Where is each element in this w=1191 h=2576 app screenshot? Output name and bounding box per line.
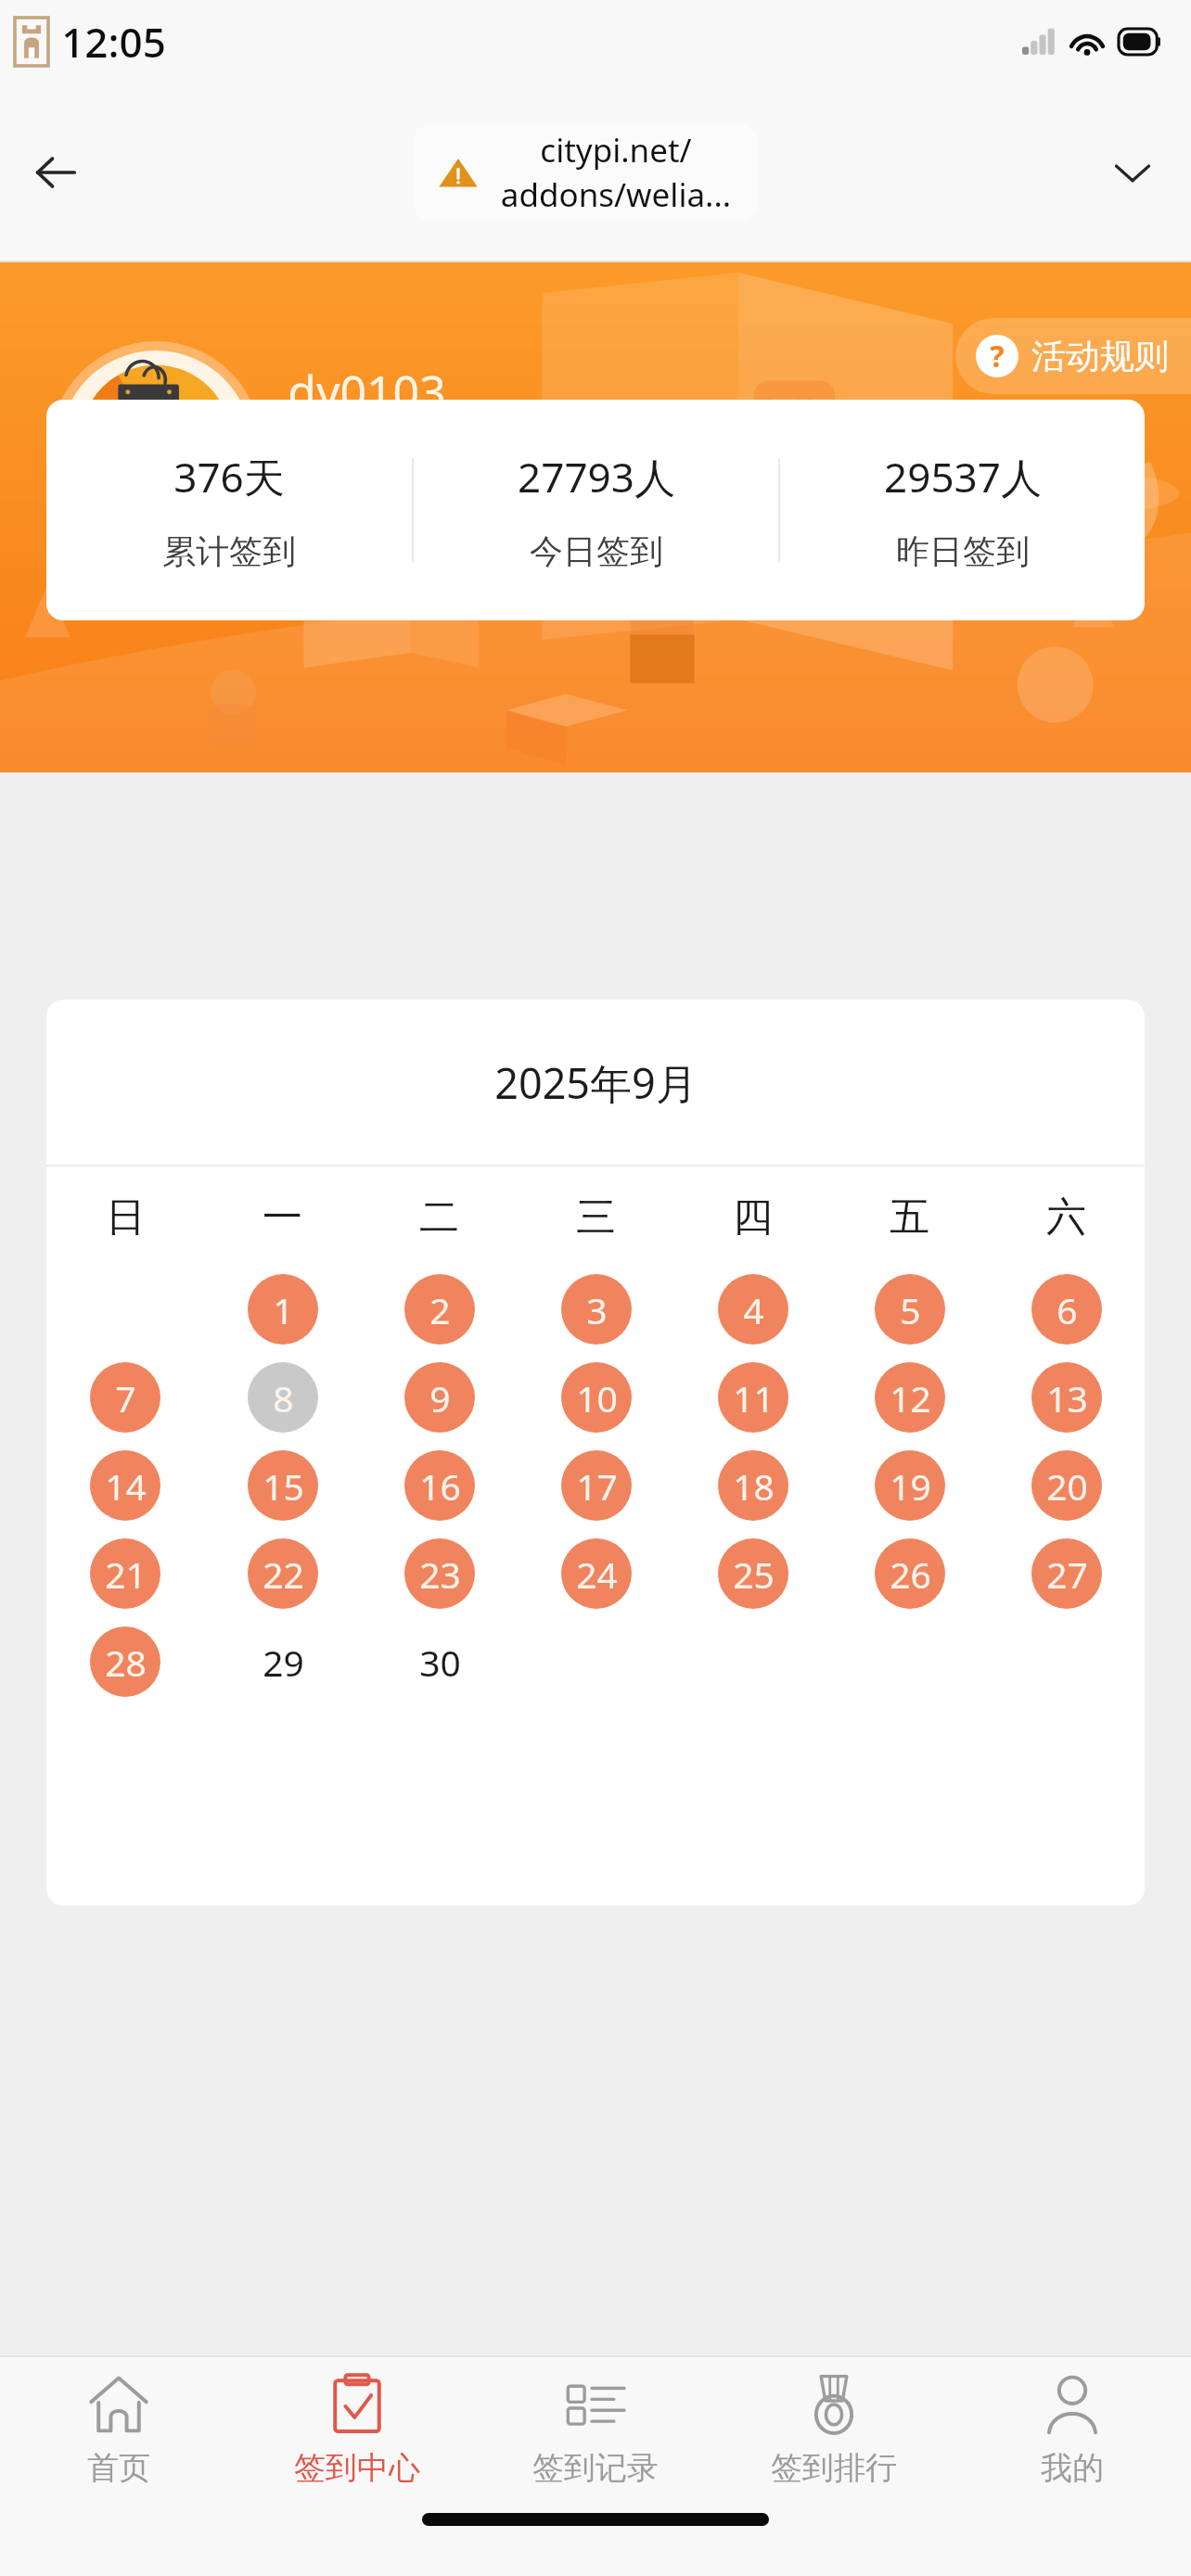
button[interactable]: 14 bbox=[90, 1450, 160, 1521]
staticText: 18 bbox=[733, 1461, 775, 1511]
button[interactable]: 首页 bbox=[0, 2357, 237, 2504]
staticText: 日 bbox=[106, 1192, 146, 1243]
staticText: 3 bbox=[586, 1285, 608, 1334]
staticText: 13 bbox=[1046, 1373, 1088, 1422]
staticText: CTP:413 bbox=[87, 516, 224, 565]
button[interactable]: 6 bbox=[1031, 1274, 1102, 1345]
button[interactable]: 签到中心 bbox=[237, 2357, 476, 2504]
button[interactable]: 19 bbox=[875, 1450, 945, 1521]
button[interactable]: 28 bbox=[90, 1626, 160, 1697]
button[interactable]: 签到排行 bbox=[714, 2357, 953, 2504]
staticText: 5 bbox=[900, 1285, 921, 1334]
staticText: 19 bbox=[890, 1461, 931, 1511]
staticText: 首页 bbox=[87, 2448, 150, 2488]
staticText: 4 bbox=[743, 1285, 764, 1334]
button[interactable]: 20 bbox=[1031, 1450, 1102, 1521]
staticText: 16 bbox=[419, 1461, 461, 1511]
staticText: 签到排行 bbox=[771, 2448, 897, 2488]
button[interactable]: 已签到 bbox=[288, 501, 725, 579]
staticText: 活动规则 bbox=[1031, 335, 1169, 378]
button[interactable]: 29 bbox=[248, 1626, 318, 1697]
button[interactable]: citypi.net/addons/welia... bbox=[414, 124, 757, 221]
staticText: 10 bbox=[576, 1373, 618, 1422]
staticText: 25 bbox=[733, 1549, 775, 1599]
button[interactable]: 24 bbox=[561, 1538, 632, 1609]
button[interactable]: 376天 bbox=[46, 400, 412, 620]
button[interactable]: 8 bbox=[248, 1362, 318, 1433]
button[interactable]: 2 bbox=[404, 1274, 475, 1345]
staticText: 已签到 bbox=[480, 516, 594, 564]
button[interactable]: 27 bbox=[1031, 1538, 1102, 1609]
button[interactable]: 17 bbox=[561, 1450, 632, 1521]
button[interactable]: 13 bbox=[1031, 1362, 1102, 1433]
button[interactable]: 5 bbox=[875, 1274, 945, 1345]
button[interactable]: 1 bbox=[248, 1274, 318, 1345]
staticText: 26 bbox=[890, 1549, 931, 1599]
staticText: 14 bbox=[105, 1461, 147, 1511]
button[interactable]: 26 bbox=[875, 1538, 945, 1609]
button[interactable]: 25 bbox=[718, 1538, 788, 1609]
button[interactable]: 18 bbox=[718, 1450, 788, 1521]
staticText: 23 bbox=[419, 1549, 461, 1599]
staticText: 11 bbox=[733, 1373, 775, 1422]
staticText: 17 bbox=[576, 1461, 618, 1511]
staticText: 六 bbox=[1046, 1192, 1086, 1243]
button[interactable]: 12 bbox=[875, 1362, 945, 1433]
button[interactable]: 9 bbox=[404, 1362, 475, 1433]
staticText: 2 bbox=[429, 1285, 451, 1334]
staticText: 28 bbox=[105, 1638, 147, 1687]
button[interactable]: 7 bbox=[90, 1362, 160, 1433]
staticText: 一 bbox=[263, 1192, 302, 1243]
button[interactable]: 10 bbox=[561, 1362, 632, 1433]
button[interactable]: 23 bbox=[404, 1538, 475, 1609]
button[interactable]: 16 bbox=[404, 1450, 475, 1521]
staticText: 9 bbox=[429, 1373, 451, 1422]
staticText: 2025年9月 bbox=[494, 1054, 698, 1111]
staticText: 30 bbox=[419, 1638, 461, 1687]
staticText: 累计签到 bbox=[162, 530, 296, 572]
button[interactable]: 4 bbox=[718, 1274, 788, 1345]
button[interactable]: 30 bbox=[404, 1626, 475, 1697]
staticText: 21 bbox=[105, 1549, 147, 1599]
staticText: 您已签到共:376天 连续签到:19天 bbox=[288, 443, 759, 486]
staticText: 今日签到 bbox=[530, 530, 663, 572]
button[interactable]: More options bbox=[1096, 136, 1169, 209]
staticText: citypi.net/addons/welia... bbox=[488, 128, 744, 217]
staticText: 29537人 bbox=[884, 449, 1042, 504]
button[interactable]: 我的 bbox=[953, 2357, 1191, 2504]
staticText: 12:05 bbox=[61, 14, 166, 70]
button[interactable]: 29537人 bbox=[780, 400, 1145, 620]
button[interactable]: 签到记录 bbox=[476, 2357, 714, 2504]
staticText: City For Pi bbox=[86, 454, 226, 492]
staticText: 20 bbox=[1046, 1461, 1088, 1511]
staticText: 29 bbox=[263, 1638, 304, 1687]
staticText: 1 bbox=[273, 1285, 294, 1334]
staticText: 三 bbox=[576, 1192, 616, 1243]
staticText: 签到中心 bbox=[294, 2448, 420, 2488]
button[interactable]: 27793人 bbox=[414, 400, 778, 620]
button[interactable]: 21 bbox=[90, 1538, 160, 1609]
staticText: 五 bbox=[890, 1192, 929, 1243]
staticText: 376天 bbox=[173, 449, 285, 504]
staticText: 7 bbox=[115, 1373, 136, 1422]
staticText: ? bbox=[990, 336, 1005, 376]
staticText: 15 bbox=[263, 1461, 304, 1511]
staticText: dy0103 bbox=[288, 360, 446, 423]
staticText: 12 bbox=[890, 1373, 931, 1422]
staticText: 24 bbox=[576, 1549, 618, 1599]
button[interactable]: 22 bbox=[248, 1538, 318, 1609]
staticText: 27793人 bbox=[518, 449, 675, 504]
button[interactable]: ? bbox=[955, 318, 1191, 394]
button[interactable]: 11 bbox=[718, 1362, 788, 1433]
staticText: 8 bbox=[273, 1373, 294, 1422]
button[interactable]: 15 bbox=[248, 1450, 318, 1521]
staticText: 二 bbox=[419, 1192, 459, 1243]
staticText: 27 bbox=[1046, 1549, 1088, 1599]
button[interactable]: 3 bbox=[561, 1274, 632, 1345]
staticText: 签到记录 bbox=[532, 2448, 659, 2488]
staticText: 四 bbox=[733, 1192, 773, 1243]
staticText: 昨日签到 bbox=[896, 530, 1030, 572]
staticText: 22 bbox=[263, 1549, 304, 1599]
staticText: 6 bbox=[1057, 1285, 1078, 1334]
button[interactable]: Back bbox=[20, 137, 91, 208]
